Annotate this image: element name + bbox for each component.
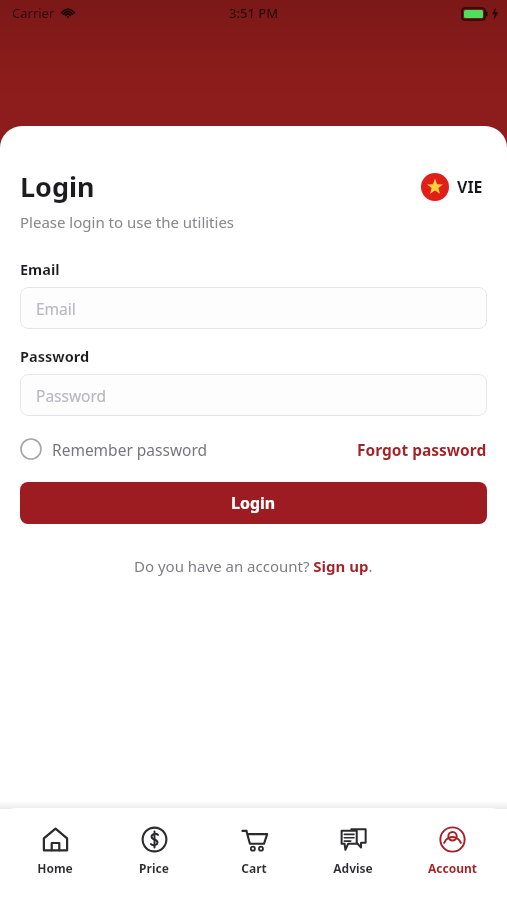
staticText: VIE: [457, 176, 483, 198]
staticText: 3:51 PM: [229, 4, 279, 22]
staticText: Home: [37, 860, 73, 876]
staticText: Login: [20, 168, 95, 205]
button[interactable]: Password: [20, 374, 487, 416]
staticText: Password: [36, 385, 107, 406]
button[interactable]: VIE: [417, 169, 487, 205]
staticText: Password: [20, 346, 90, 366]
button[interactable]: Advise: [309, 824, 397, 878]
button[interactable]: Do you have an account? Sign up.: [134, 556, 373, 576]
button[interactable]: Cart: [210, 824, 298, 878]
button[interactable]: Email: [20, 287, 487, 329]
staticText: Carrier: [12, 4, 55, 22]
staticText: Forgot password: [357, 439, 487, 460]
staticText: Advise: [333, 860, 373, 876]
staticText: Price: [139, 860, 169, 876]
button[interactable]: Price: [110, 824, 198, 878]
button[interactable]: Account: [408, 824, 496, 878]
staticText: Account: [428, 860, 477, 876]
staticText: Login: [231, 492, 276, 514]
staticText: Remember password: [52, 439, 208, 460]
staticText: Please login to use the utilities: [20, 212, 235, 232]
staticText: Email: [20, 259, 60, 279]
button[interactable]: Remember password: [20, 434, 208, 464]
button[interactable]: Home: [11, 824, 99, 878]
staticText: Do you have an account? Sign up.: [134, 556, 373, 576]
button[interactable]: Forgot password: [357, 435, 487, 464]
staticText: Cart: [241, 860, 267, 876]
staticText: Email: [36, 298, 76, 319]
button[interactable]: Login: [20, 482, 487, 524]
